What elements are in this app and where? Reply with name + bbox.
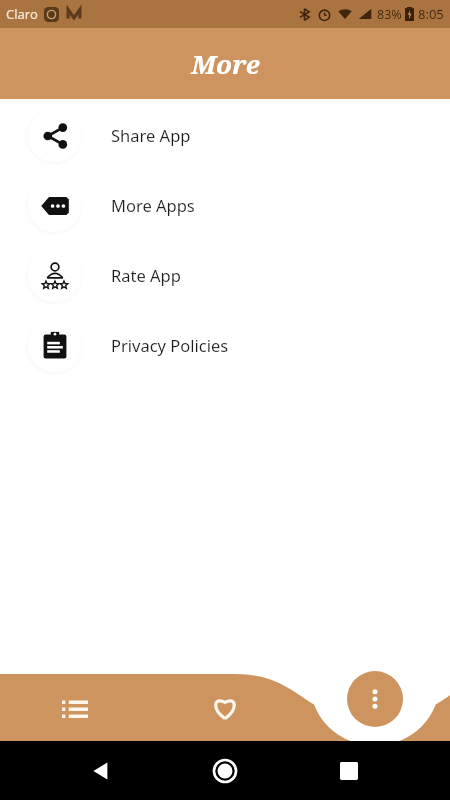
button[interactable]: Rate App — [0, 240, 450, 310]
staticText: More Apps — [111, 194, 195, 216]
staticText: Claro — [6, 5, 38, 23]
button[interactable]: Recent apps — [328, 750, 370, 792]
button[interactable]: More options — [347, 671, 403, 727]
button[interactable]: More Apps — [0, 170, 450, 240]
staticText: 8:05 — [418, 5, 444, 23]
button[interactable]: Share App — [0, 100, 450, 170]
button[interactable]: Favorites — [150, 674, 300, 741]
staticText: Rate App — [111, 264, 181, 286]
button[interactable]: Back — [80, 750, 122, 792]
button[interactable]: Privacy Policies — [0, 310, 450, 380]
staticText: Privacy Policies — [111, 334, 229, 356]
staticText: 83% — [377, 6, 402, 23]
staticText: Share App — [111, 124, 191, 146]
button[interactable]: List — [0, 674, 150, 741]
staticText: More — [191, 46, 260, 81]
button[interactable]: Home — [204, 750, 246, 792]
